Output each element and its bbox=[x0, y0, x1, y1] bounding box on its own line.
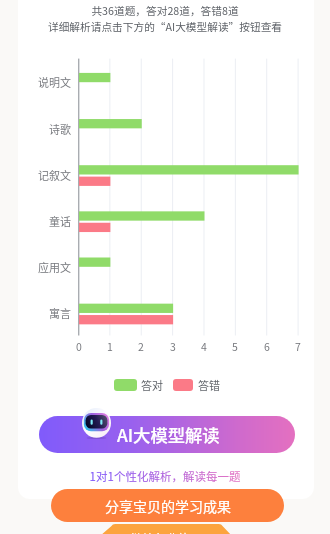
staticText: 诗歌 bbox=[21, 121, 71, 137]
button[interactable]: AI大模型解读 bbox=[39, 416, 295, 453]
staticText: 答对 bbox=[141, 377, 163, 393]
staticText: 1对1个性化解析，解读每一题 bbox=[0, 468, 330, 485]
staticText: 1 bbox=[100, 339, 120, 354]
staticText: 2 bbox=[131, 339, 151, 354]
staticText: 应用文 bbox=[21, 259, 71, 275]
staticText: 寓言 bbox=[21, 305, 71, 321]
staticText: 7 bbox=[288, 339, 308, 354]
button[interactable]: 继续免费练习 bbox=[100, 524, 232, 534]
staticText: 详细解析请点击下方的“AI大模型解读”按钮查看 bbox=[0, 19, 330, 34]
staticText: 共36道题，答对28道，答错8道 bbox=[0, 3, 330, 18]
staticText: 答错 bbox=[198, 377, 220, 393]
staticText: AI大模型解读 bbox=[117, 422, 220, 447]
other: AI assistant bbox=[82, 408, 111, 439]
staticText: 童话 bbox=[21, 213, 71, 229]
button[interactable]: 分享宝贝的学习成果 bbox=[51, 489, 284, 522]
staticText: 5 bbox=[225, 339, 245, 354]
staticText: 3 bbox=[163, 339, 183, 354]
staticText: 0 bbox=[69, 339, 89, 354]
staticText: 记叙文 bbox=[21, 167, 71, 183]
staticText: 6 bbox=[257, 339, 277, 354]
staticText: 继续免费练习 bbox=[1, 530, 330, 534]
staticText: 分享宝贝的学习成果 bbox=[105, 496, 231, 516]
staticText: 说明文 bbox=[21, 74, 71, 90]
staticText: 4 bbox=[194, 339, 214, 354]
